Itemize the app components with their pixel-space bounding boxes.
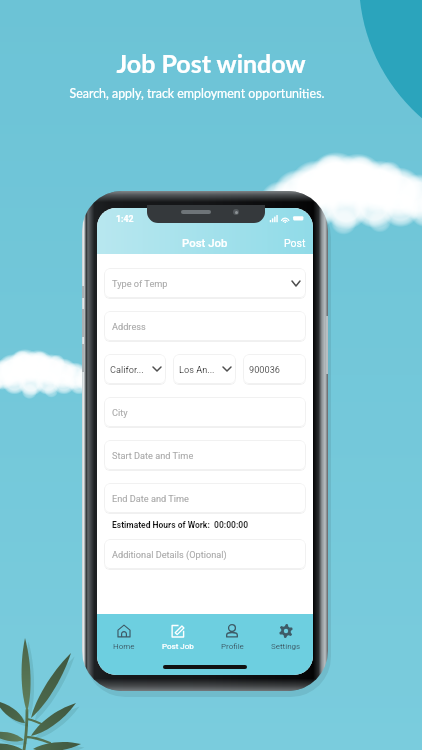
button[interactable]: Post Job [151, 622, 205, 653]
button[interactable]: Califor... [104, 354, 166, 384]
staticText: End Date and Time [112, 493, 189, 504]
button[interactable]: Type of Temp [104, 268, 306, 298]
staticText: 1:42 [116, 214, 134, 224]
staticText: Job Post window [0, 48, 422, 78]
button[interactable]: Home [97, 622, 151, 653]
staticText: Home [113, 642, 135, 651]
staticText: Los An... [179, 364, 215, 375]
button[interactable]: City [104, 397, 306, 427]
staticText: Type of Temp [112, 278, 168, 289]
staticText: Post [284, 237, 306, 249]
button[interactable]: 900036 [243, 354, 306, 384]
staticText: Califor... [110, 364, 144, 375]
button[interactable]: Profile [205, 622, 259, 653]
staticText: City [112, 407, 128, 418]
staticText: Start Date and Time [112, 450, 194, 461]
staticText: Settings [271, 642, 301, 651]
staticText: Estimated Hours of Work: 00:00:00 [112, 520, 249, 530]
staticText: Profile [221, 642, 244, 651]
button[interactable]: End Date and Time [104, 483, 306, 513]
button[interactable]: Address [104, 311, 306, 341]
staticText: Additional Details (Optional) [112, 549, 227, 560]
staticText: Address [112, 321, 146, 332]
staticText: Search, apply, track employment opportun… [0, 86, 408, 101]
staticText: Post Job [162, 642, 194, 651]
button[interactable]: Los An... [173, 354, 236, 384]
button[interactable]: Start Date and Time [104, 440, 306, 470]
staticText: 900036 [249, 364, 280, 375]
button[interactable]: Settings [259, 622, 313, 653]
button[interactable]: Additional Details (Optional) [104, 539, 306, 569]
staticText: Post Job [182, 236, 228, 249]
